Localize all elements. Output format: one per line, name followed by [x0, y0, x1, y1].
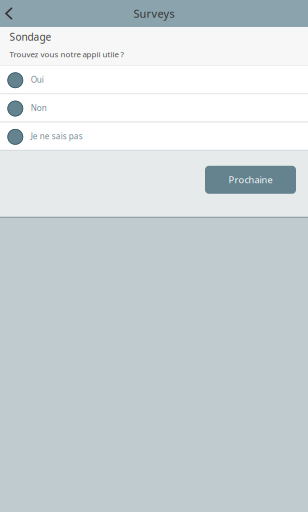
- button[interactable]: Prochaine: [205, 166, 296, 194]
- button[interactable]: Back: [0, 0, 23, 27]
- staticText: Oui: [31, 74, 44, 85]
- staticText: Sondage: [9, 30, 51, 44]
- button[interactable]: Oui: [0, 66, 308, 93]
- staticText: Trouvez vous notre appli utile ?: [9, 49, 123, 59]
- staticText: Je ne sais pas: [31, 131, 83, 142]
- button[interactable]: Je ne sais pas: [0, 122, 308, 150]
- button[interactable]: Non: [0, 94, 308, 122]
- staticText: Prochaine: [228, 173, 272, 186]
- staticText: Surveys: [133, 6, 174, 21]
- staticText: Non: [31, 102, 47, 113]
